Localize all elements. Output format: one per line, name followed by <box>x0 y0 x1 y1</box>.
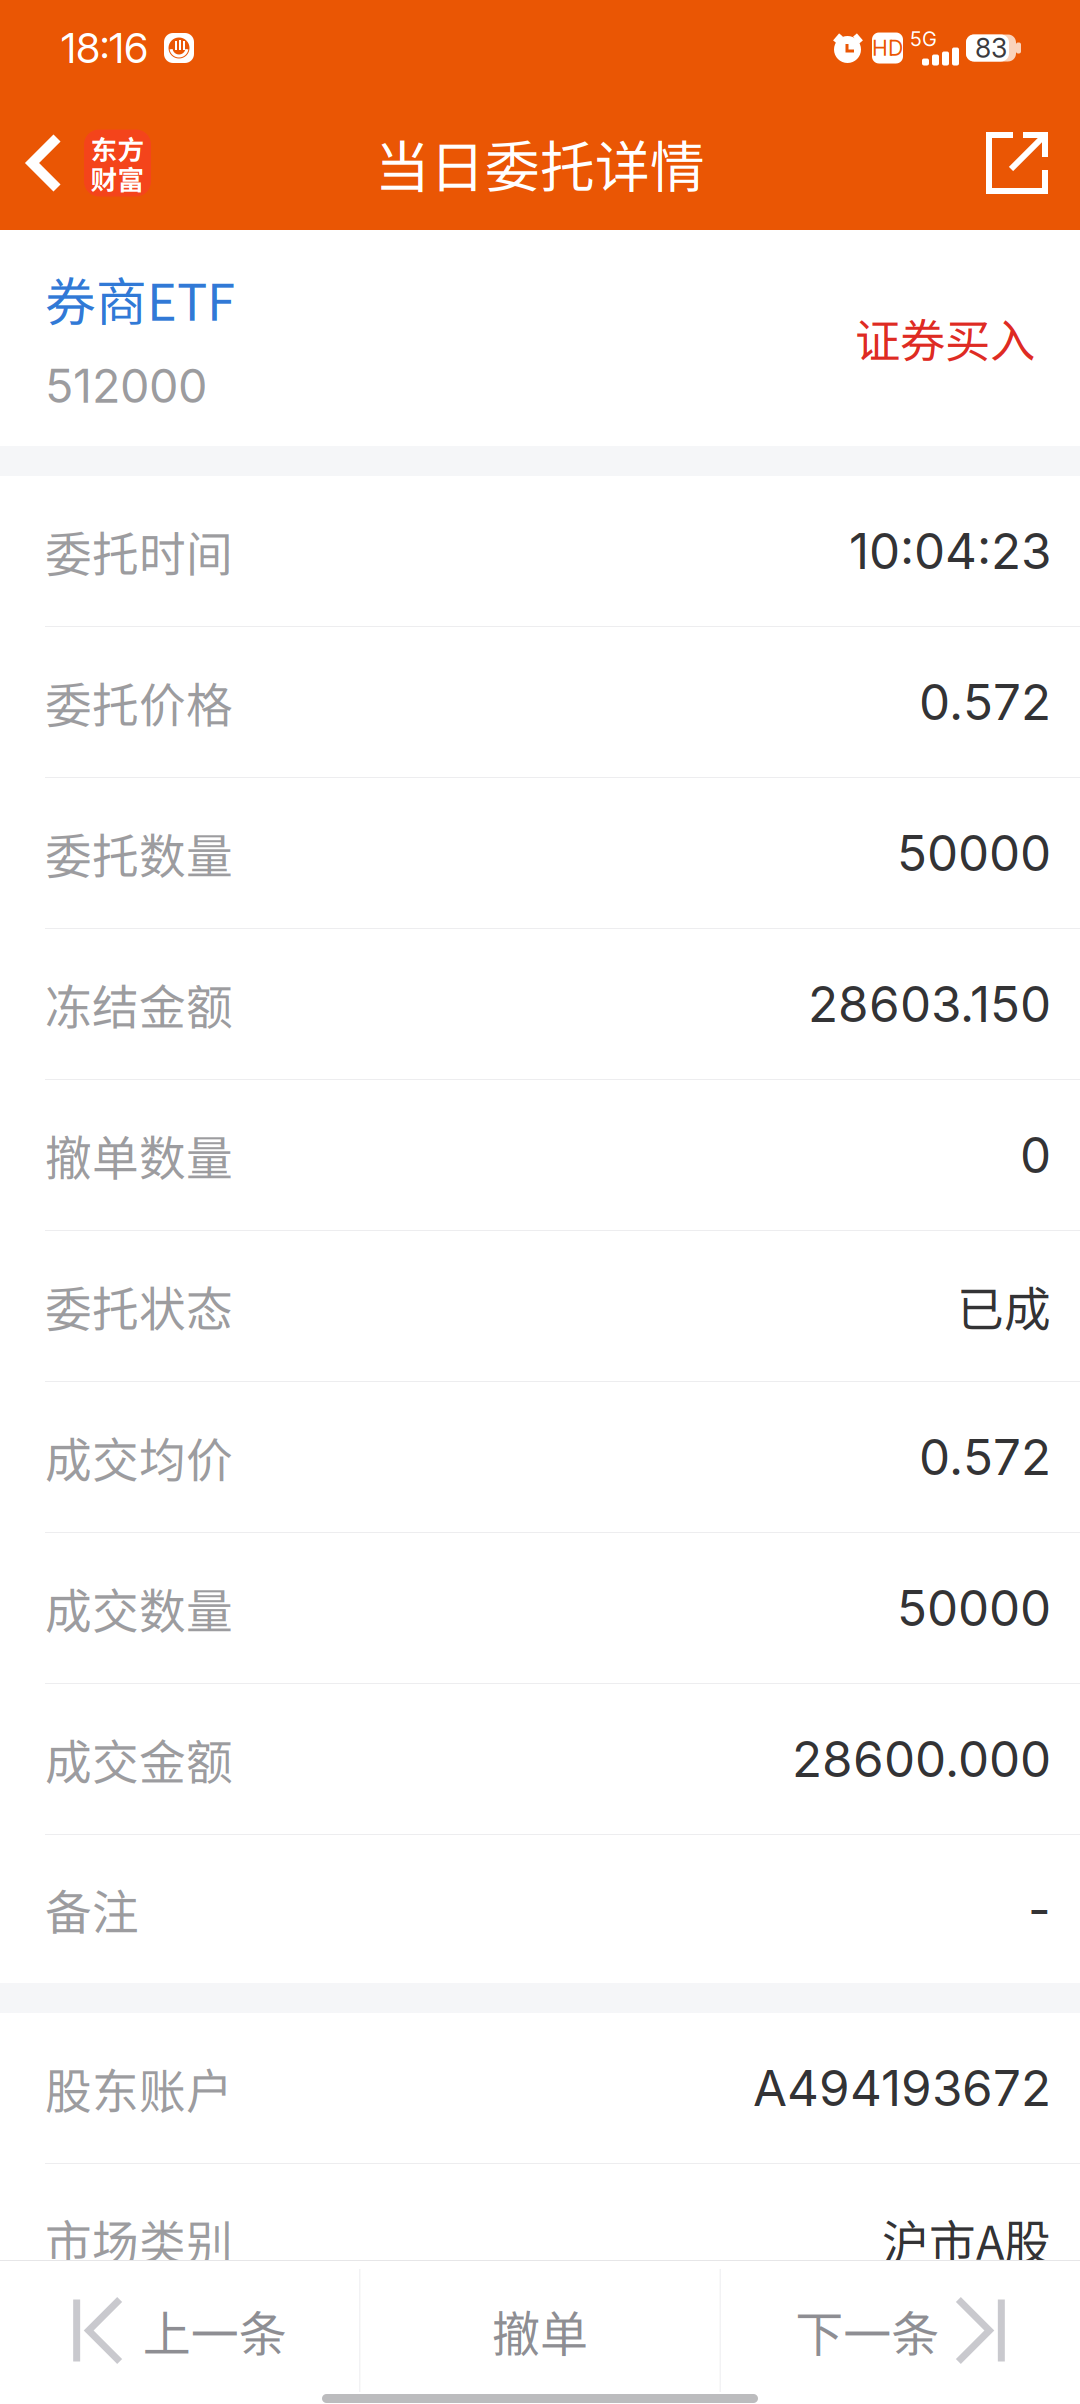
staticText: - <box>1028 1879 1051 1939</box>
staticText: 成交金额 <box>45 1725 233 1793</box>
staticText: 撤单 <box>492 2296 588 2365</box>
button[interactable]: 撤单 <box>360 2269 720 2392</box>
staticText: 券商ETF <box>45 262 235 335</box>
button[interactable]: Share <box>955 96 1080 230</box>
staticText: 成交均价 <box>45 1423 233 1491</box>
staticText: 当日委托详情 <box>375 123 705 203</box>
staticText: 上一条 <box>143 2296 287 2365</box>
staticText: 50000 <box>897 1578 1051 1638</box>
staticText: 512000 <box>45 357 207 414</box>
staticText: 0.572 <box>919 1427 1051 1487</box>
button[interactable]: 上一条 <box>0 2269 359 2392</box>
staticText: 下一条 <box>795 2296 939 2365</box>
staticText: 50000 <box>897 823 1051 883</box>
staticText: 0.572 <box>919 672 1051 732</box>
staticText: 成交数量 <box>45 1574 233 1642</box>
staticText: 委托数量 <box>45 819 233 887</box>
staticText: 委托状态 <box>45 1272 233 1340</box>
staticText: 备注 <box>45 1875 139 1943</box>
staticText: 沪市A股 <box>882 2206 1051 2273</box>
staticText: 委托时间 <box>45 517 233 585</box>
staticText: 财富 <box>90 159 144 197</box>
staticText: 83 <box>975 32 1007 64</box>
button[interactable]: 下一条 <box>721 2269 1080 2392</box>
staticText: 0 <box>1020 1125 1051 1185</box>
staticText: A494193672 <box>753 2058 1051 2118</box>
staticText: 证券买入 <box>855 305 1035 371</box>
staticText: 委托价格 <box>45 668 233 736</box>
staticText: 已成 <box>957 1272 1051 1340</box>
staticText: 股东账户 <box>45 2054 233 2122</box>
staticText: 撤单数量 <box>45 1121 233 1189</box>
staticText: 冻结金额 <box>45 970 233 1038</box>
button[interactable]: Back <box>0 96 175 230</box>
staticText: 5G <box>910 27 937 51</box>
staticText: HD <box>872 35 903 61</box>
staticText: 市场类别 <box>45 2206 233 2273</box>
staticText: 18:16 <box>61 23 148 73</box>
staticText: 东方 <box>90 129 144 167</box>
staticText: 28600.000 <box>792 1729 1051 1789</box>
staticText: 28603.150 <box>808 974 1051 1034</box>
staticText: 10:04:23 <box>849 521 1051 581</box>
